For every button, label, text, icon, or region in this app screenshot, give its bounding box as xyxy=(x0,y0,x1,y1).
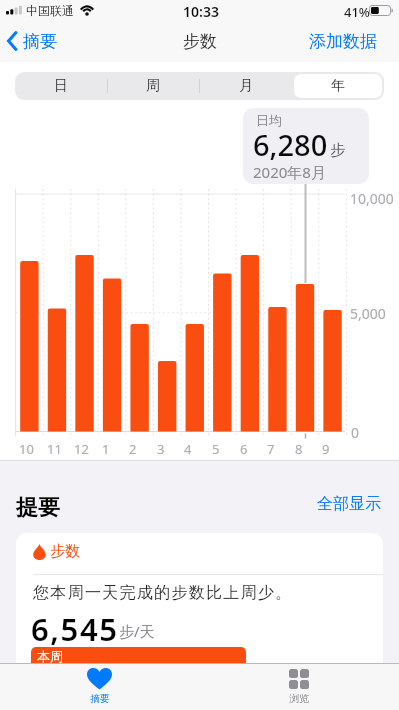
staticText: 步数 xyxy=(183,31,217,52)
staticText: 1 xyxy=(102,440,110,458)
staticText: 7 xyxy=(267,440,275,458)
staticText: 11 xyxy=(47,440,62,458)
staticText: 8 xyxy=(295,440,303,458)
staticText: 提要 xyxy=(16,494,60,522)
button[interactable]: 年 xyxy=(294,74,382,98)
staticText: 2020年8月 xyxy=(253,162,326,182)
staticText: 12 xyxy=(74,440,89,458)
staticText: 2 xyxy=(129,440,137,458)
staticText: 步 xyxy=(330,141,345,160)
button[interactable]: 步数 xyxy=(16,533,383,663)
button[interactable]: 浏览 xyxy=(199,664,399,710)
staticText: 5 xyxy=(212,440,220,458)
staticText: 4 xyxy=(184,440,192,458)
button[interactable]: 周 xyxy=(107,72,199,100)
staticText: 0 xyxy=(351,423,360,442)
staticText: 您本周一天完成的步数比上周少。 xyxy=(33,583,293,603)
button[interactable]: 月 xyxy=(200,72,292,100)
staticText: 3 xyxy=(157,440,165,458)
staticText: 10:33 xyxy=(183,2,219,21)
staticText: 摘要 xyxy=(90,692,110,705)
staticText: 年 xyxy=(331,77,345,95)
staticText: 6 xyxy=(240,440,248,458)
button[interactable]: 全部显示 xyxy=(317,494,381,514)
staticText: 步/天 xyxy=(119,621,155,641)
staticText: 日均 xyxy=(256,112,282,128)
staticText: 日 xyxy=(54,77,68,95)
staticText: 10,000 xyxy=(350,189,394,208)
staticText: 周 xyxy=(146,77,160,95)
button[interactable]: 日 xyxy=(15,72,107,100)
button[interactable]: 摘要 xyxy=(6,29,57,53)
staticText: 本周 xyxy=(37,648,63,663)
button[interactable]: 添加数据 xyxy=(309,29,377,53)
staticText: 浏览 xyxy=(289,692,309,705)
button[interactable]: 摘要 xyxy=(0,664,199,710)
staticText: 添加数据 xyxy=(309,31,377,52)
staticText: 步数 xyxy=(50,542,80,561)
staticText: 摘要 xyxy=(23,31,57,52)
staticText: 全部显示 xyxy=(317,494,381,514)
staticText: 月 xyxy=(239,77,253,95)
staticText: 6,280 xyxy=(253,125,328,164)
staticText: 中国联通 xyxy=(26,3,74,18)
staticText: 6,545 xyxy=(31,608,119,650)
staticText: 10 xyxy=(19,440,34,458)
staticText: 9 xyxy=(322,440,330,458)
staticText: 5,000 xyxy=(350,304,386,323)
staticText: 41% xyxy=(344,3,370,21)
